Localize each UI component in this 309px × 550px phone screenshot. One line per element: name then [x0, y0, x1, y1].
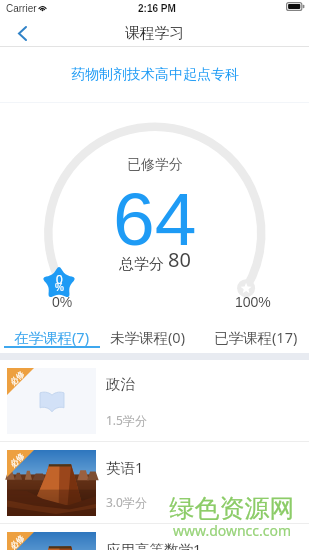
staticText: 1.5学分 — [106, 412, 147, 428]
staticText: www.downcc.com — [169, 521, 295, 540]
staticText: 0% — [52, 294, 73, 310]
staticText: 64 — [113, 177, 197, 261]
staticText: 课程学习 — [125, 24, 185, 43]
staticText: 未学课程(0) — [110, 327, 185, 347]
staticText: 0 — [56, 273, 63, 286]
staticText: 在学课程(7) — [14, 327, 89, 347]
staticText: % — [55, 282, 64, 293]
staticText: 政治 — [106, 375, 135, 393]
button[interactable]: 必修 — [0, 442, 309, 524]
staticText: 已修学分 — [127, 156, 183, 174]
staticText: 100% — [235, 294, 271, 310]
staticText: 英语1 — [106, 457, 144, 477]
button[interactable]: 在学课程(7) — [0, 318, 103, 354]
button[interactable]: 必修 — [0, 524, 309, 550]
staticText: 2:16 PM — [138, 3, 176, 14]
button[interactable]: 必修 — [0, 360, 309, 442]
staticText: 必修 — [8, 369, 26, 387]
staticText: 必修 — [8, 533, 26, 550]
staticText: Carrier — [6, 3, 37, 14]
button[interactable]: 药物制剂技术高中起点专科 — [0, 47, 309, 103]
staticText: 绿色资源网 — [169, 493, 295, 524]
staticText: 80 — [168, 246, 191, 273]
button[interactable]: 未学课程(0) — [96, 318, 199, 354]
staticText: 药物制剂技术高中起点专科 — [71, 66, 239, 84]
staticText: 总学分 — [119, 253, 168, 273]
staticText: 已学课程(17) — [214, 327, 298, 347]
button[interactable]: Back — [0, 20, 44, 47]
staticText: 3.0学分 — [106, 494, 147, 510]
staticText: 必修 — [8, 451, 26, 469]
button[interactable]: 已学课程(17) — [202, 318, 309, 354]
staticText: 应用高等数学1 — [106, 539, 202, 550]
